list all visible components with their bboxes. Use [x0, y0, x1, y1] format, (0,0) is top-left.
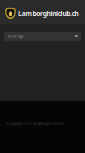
staticText: © Copyright 2015 by lamborghiniclub.ch — [6, 122, 64, 125]
button[interactable]: Lamborghiniclub.ch home — [0, 0, 85, 24]
button[interactable]: Select Page — [4, 32, 81, 41]
staticText: Lamborghiniclub.ch — [18, 9, 79, 18]
staticText: Select Page — [8, 35, 24, 38]
